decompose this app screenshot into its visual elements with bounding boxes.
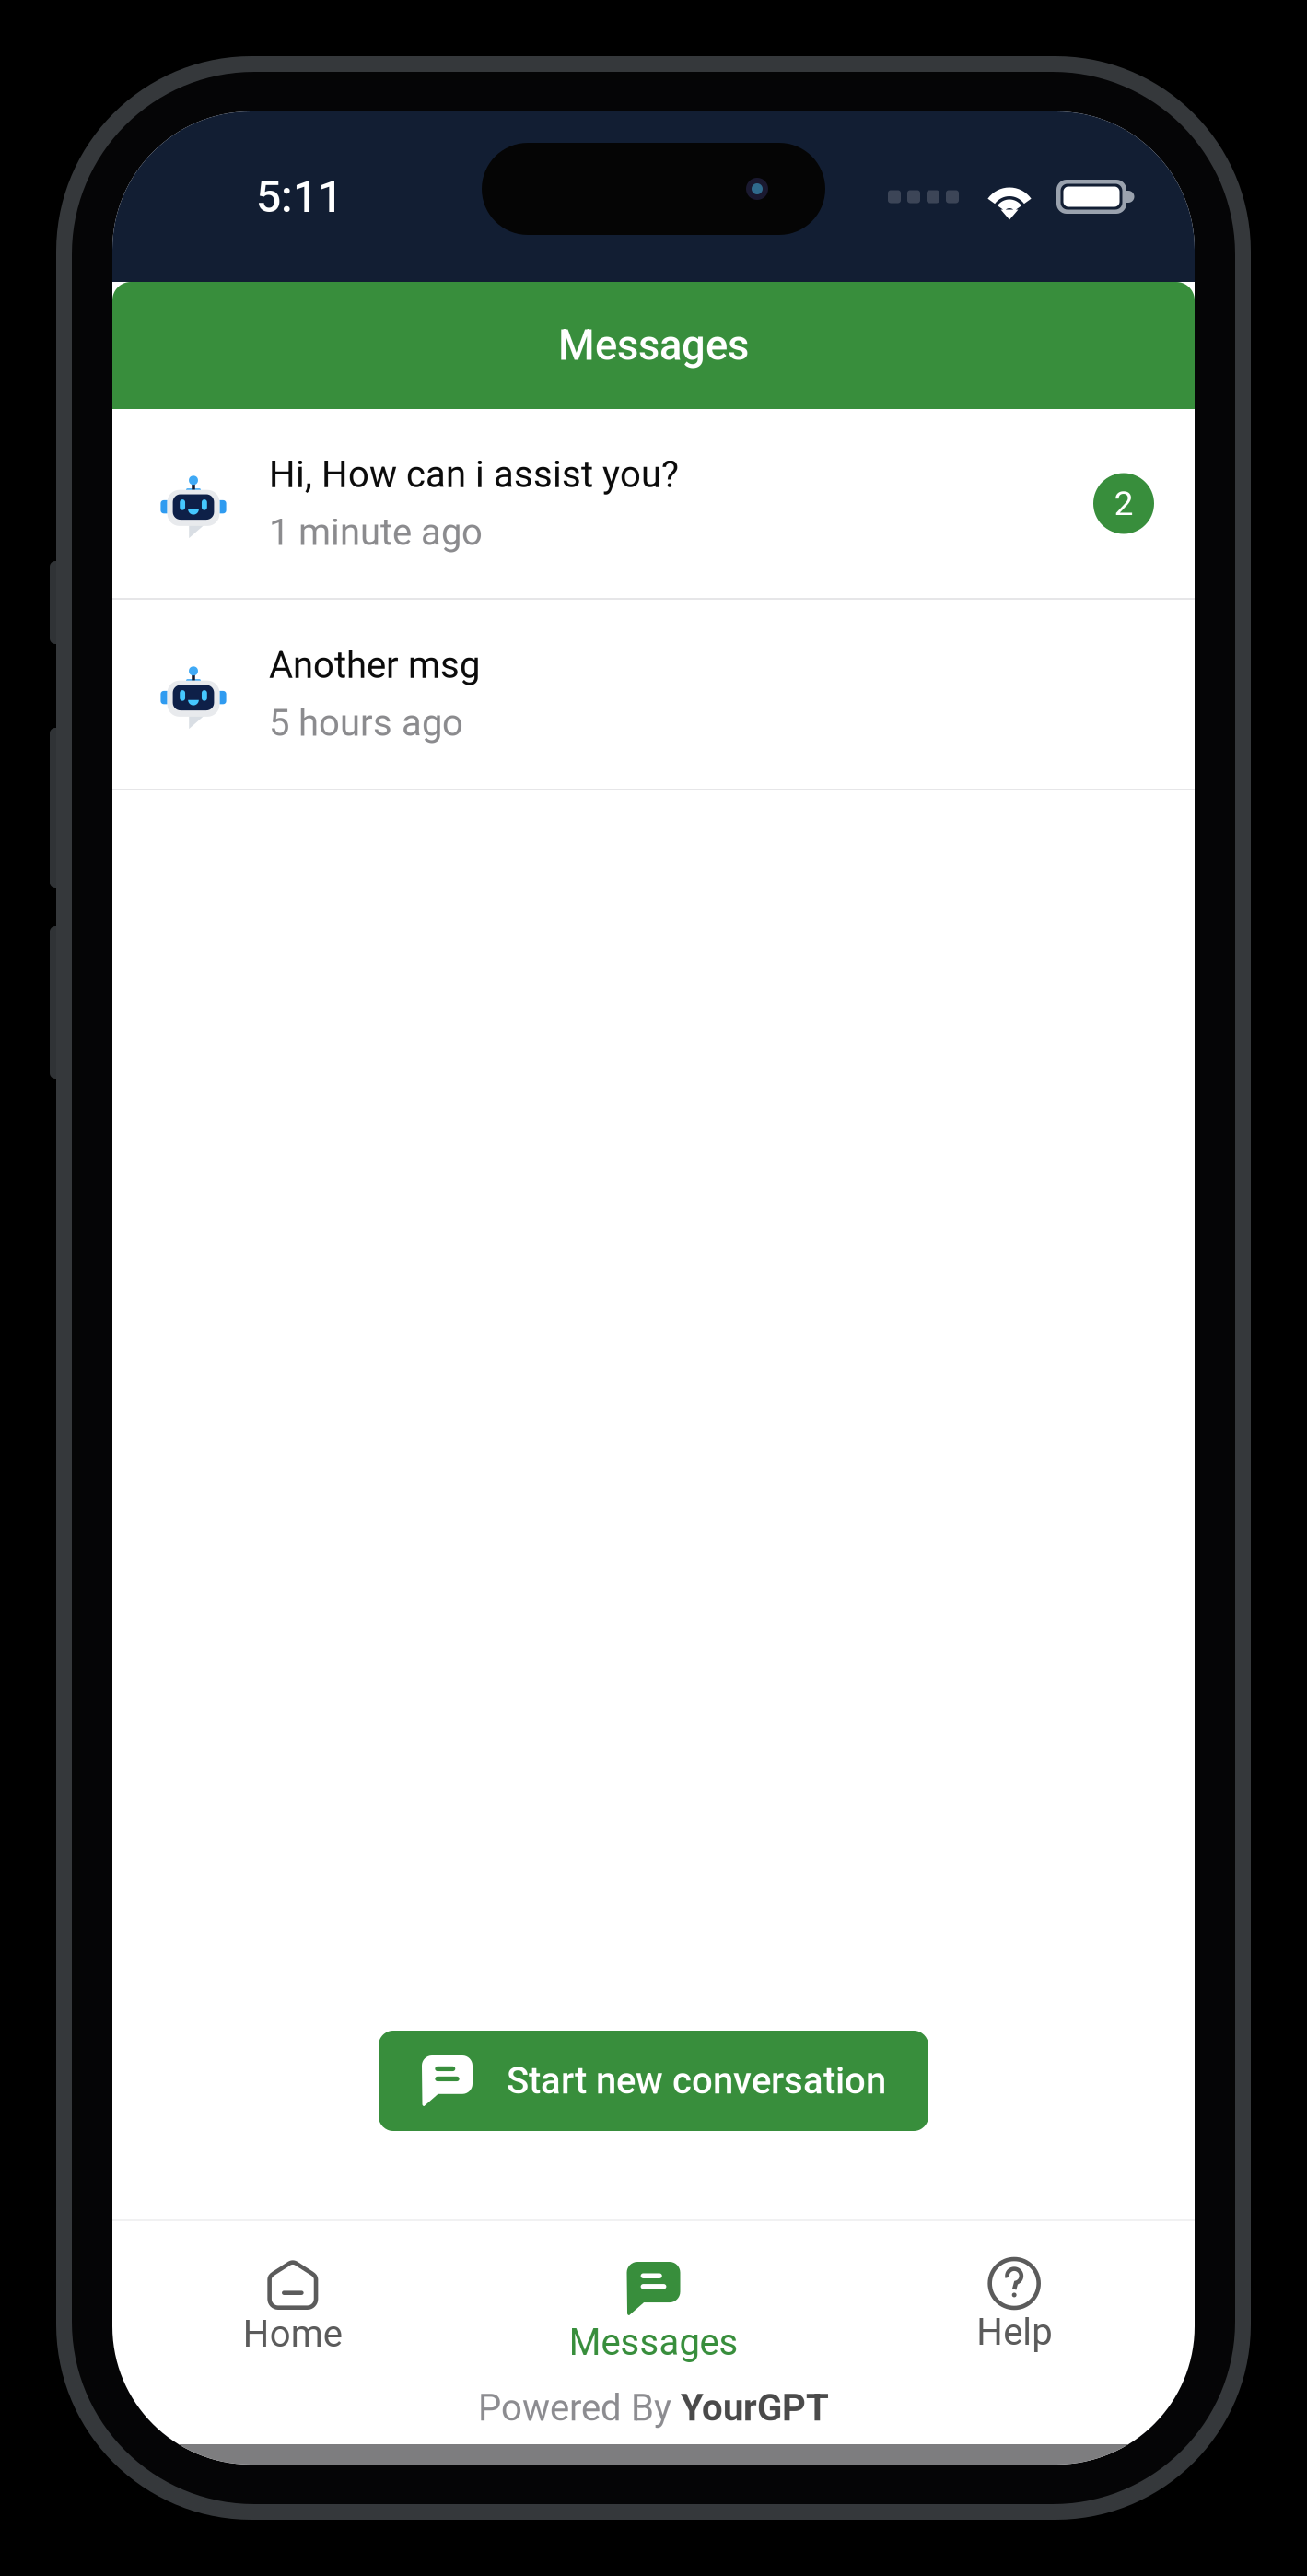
staticText: 1 minute ago: [269, 511, 483, 554]
staticText: Another msg: [269, 644, 480, 687]
staticText: Help: [977, 2311, 1052, 2354]
staticText: Home: [243, 2313, 342, 2356]
button[interactable]: Start new conversation: [379, 2031, 928, 2131]
button[interactable]: Home: [112, 2221, 473, 2371]
staticText: YourGPT: [681, 2386, 829, 2430]
staticText: Hi, How can i assist you?: [269, 453, 679, 496]
staticText: Powered By: [478, 2386, 681, 2430]
staticText: Start new conversation: [507, 2059, 886, 2102]
staticText: Messages: [569, 2321, 738, 2364]
button[interactable]: Hi, How can i assist you?: [112, 409, 1195, 598]
staticText: 5:11: [256, 171, 343, 223]
button[interactable]: Help: [834, 2221, 1195, 2371]
staticText: 5 hours ago: [269, 702, 463, 745]
button[interactable]: Messages: [473, 2221, 834, 2371]
staticText: 2: [1114, 483, 1133, 524]
button[interactable]: Another msg: [112, 600, 1195, 789]
staticText: Messages: [558, 321, 749, 370]
